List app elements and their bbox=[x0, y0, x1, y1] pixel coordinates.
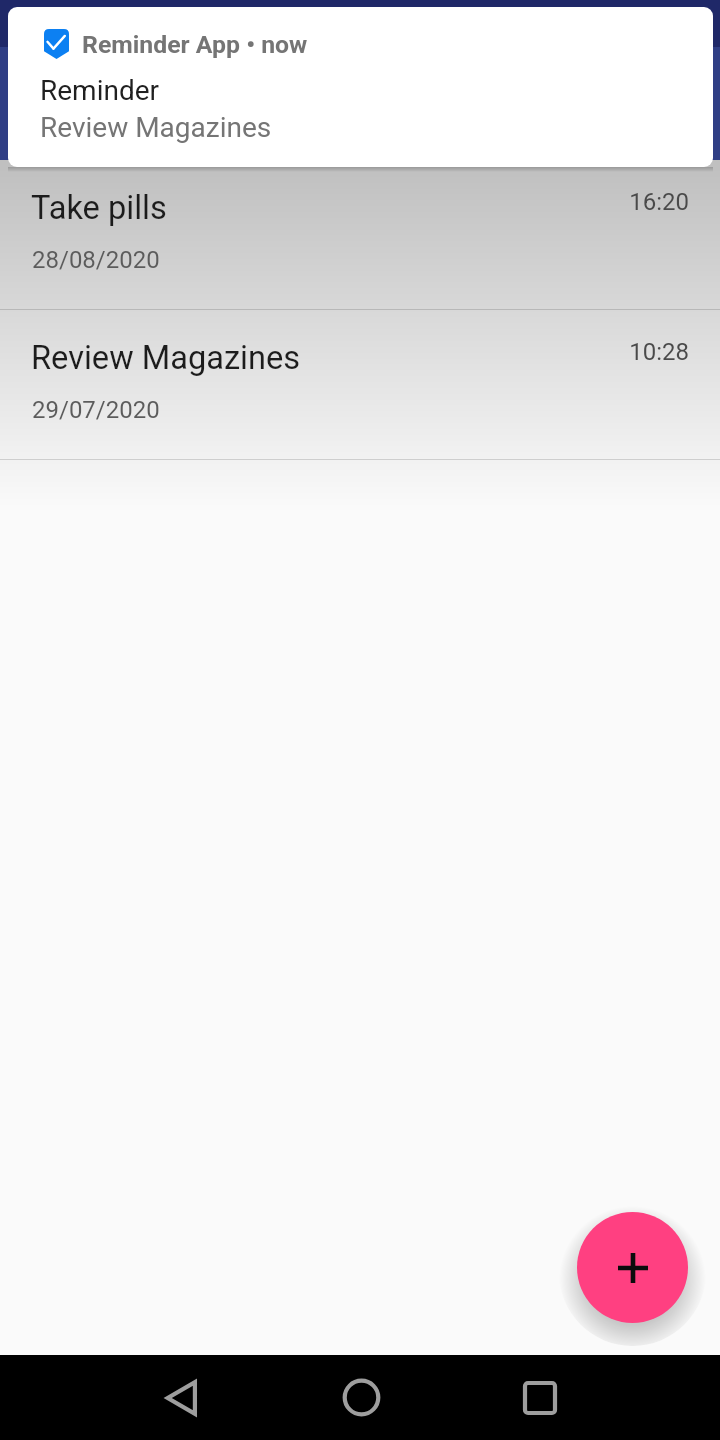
staticText: Reminder App • now bbox=[82, 30, 308, 59]
button[interactable]: Take pills bbox=[0, 160, 720, 310]
staticText: Take pills bbox=[31, 189, 167, 227]
button[interactable]: Reminder App • now bbox=[8, 7, 713, 167]
staticText: 16:20 bbox=[629, 188, 689, 216]
button[interactable]: Add reminder bbox=[577, 1212, 688, 1323]
staticText: Review Magazines bbox=[31, 339, 301, 377]
button[interactable]: Recent apps bbox=[495, 1355, 585, 1440]
staticText: 10:28 bbox=[629, 338, 689, 366]
button[interactable]: Review Magazines bbox=[0, 310, 720, 460]
staticText: Review Magazines bbox=[40, 111, 272, 144]
button[interactable]: Home bbox=[316, 1355, 406, 1440]
button[interactable]: Back bbox=[137, 1355, 227, 1440]
staticText: 29/07/2020 bbox=[32, 396, 160, 424]
staticText: 28/08/2020 bbox=[32, 246, 160, 274]
staticText: Reminder bbox=[40, 74, 160, 107]
